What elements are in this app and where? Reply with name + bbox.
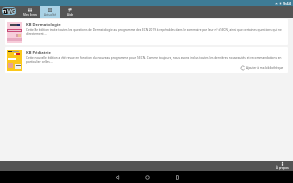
button[interactable]: KB Pédiatrie	[5, 47, 288, 73]
staticText: VG	[7, 7, 16, 15]
staticText: À propos	[276, 166, 289, 170]
staticText: directement ...	[26, 32, 47, 36]
staticText: KB Pédiatrie	[26, 50, 52, 56]
button[interactable]: Mes livres	[20, 6, 40, 18]
button[interactable]: KB Dermatologie	[5, 19, 288, 45]
staticText: 9:44	[283, 1, 291, 6]
button[interactable]: VG Editions home	[2, 7, 16, 15]
staticText: Cette nouvelle édition a été revue en fo…	[26, 56, 285, 60]
staticText: Ajouter à ma bibliothèque	[246, 66, 284, 70]
staticText: Aide	[67, 13, 74, 17]
staticText: particulier celles ...	[26, 60, 53, 64]
staticText: Mes livres	[23, 13, 38, 17]
staticText: KB Dermatologie	[26, 22, 61, 28]
button[interactable]: Actualité	[40, 6, 60, 18]
button[interactable]: Ajouter à ma bibliothèque	[240, 65, 285, 71]
button[interactable]: Back	[110, 171, 124, 183]
button[interactable]: À propos	[275, 162, 289, 170]
staticText: Actualité	[44, 13, 57, 17]
button[interactable]: Home	[140, 171, 154, 183]
button[interactable]: Recent apps	[170, 171, 184, 183]
staticText: Cette 8e édition traite toutes les quest…	[26, 28, 285, 32]
button[interactable]: Aide	[60, 6, 80, 18]
